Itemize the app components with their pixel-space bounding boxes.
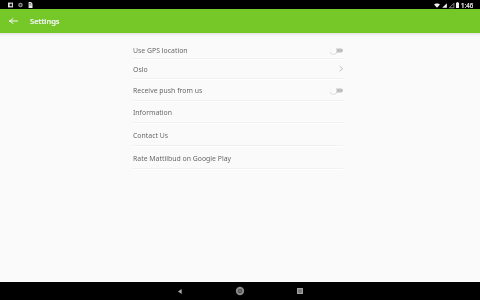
button[interactable]: Contact Us bbox=[0, 124, 480, 147]
button[interactable]: Receive push from us bbox=[0, 79, 480, 102]
staticText: Information bbox=[133, 108, 172, 117]
staticText: 1:46 bbox=[461, 1, 474, 9]
staticText: Use GPS location bbox=[133, 46, 188, 55]
staticText: Receive push from us bbox=[133, 86, 203, 95]
staticText: Oslo bbox=[133, 65, 148, 74]
button[interactable]: Recent apps bbox=[287, 282, 313, 300]
button[interactable]: Rate Mattilbud on Google Play bbox=[0, 147, 480, 170]
button[interactable]: Back bbox=[167, 282, 193, 300]
staticText: Rate Mattilbud on Google Play bbox=[133, 154, 232, 163]
button[interactable]: Home bbox=[227, 282, 253, 300]
staticText: Contact Us bbox=[133, 131, 169, 140]
button[interactable]: Navigate up bbox=[0, 9, 26, 33]
button[interactable]: Oslo bbox=[0, 59, 480, 79]
button[interactable]: Use GPS location bbox=[0, 40, 480, 60]
button[interactable]: Information bbox=[0, 101, 480, 124]
staticText: Settings bbox=[30, 16, 60, 26]
